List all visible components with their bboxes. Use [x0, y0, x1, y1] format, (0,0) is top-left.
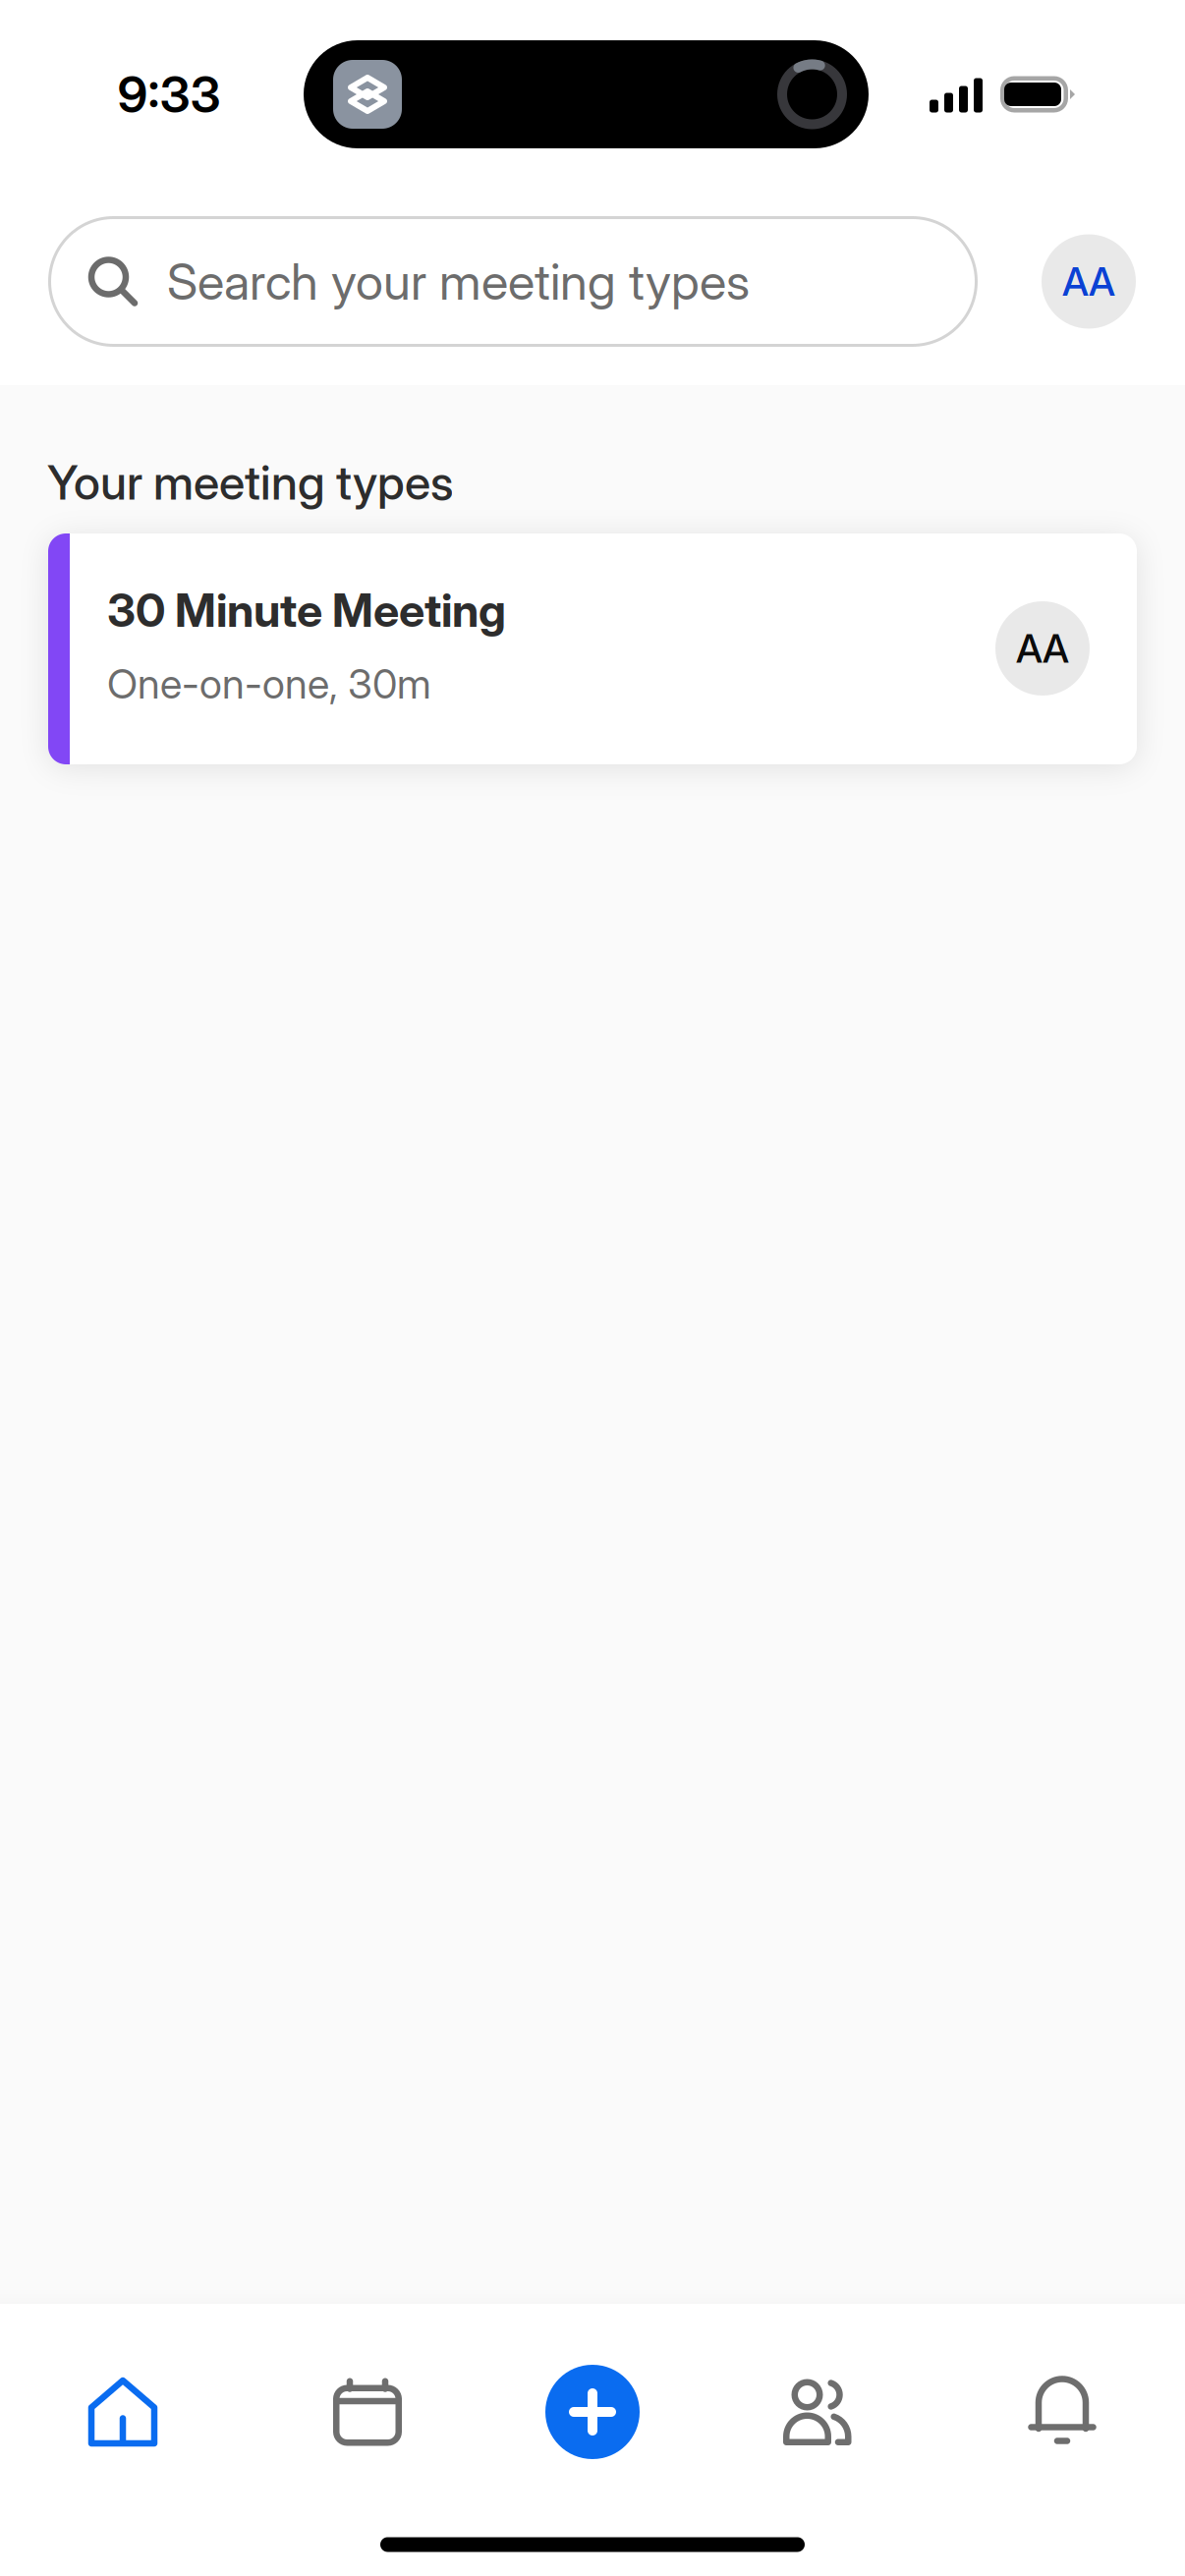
staticText: 9:33: [117, 64, 221, 124]
button[interactable]: Account: [1042, 234, 1136, 329]
button[interactable]: 30 Minute Meeting: [48, 533, 1137, 764]
button[interactable]: Calendar: [269, 2333, 466, 2491]
staticText: AA: [1016, 625, 1069, 672]
button[interactable]: Home: [25, 2333, 221, 2491]
button[interactable]: Create: [494, 2333, 691, 2491]
staticText: AA: [1062, 258, 1115, 305]
staticText: One-on-one, 30m: [107, 659, 431, 708]
button[interactable]: Search your meeting types: [48, 216, 978, 347]
button[interactable]: Notifications: [964, 2333, 1160, 2491]
staticText: 30 Minute Meeting: [107, 582, 506, 638]
button[interactable]: Contacts: [719, 2333, 916, 2491]
staticText: Search your meeting types: [167, 251, 750, 312]
staticText: Your meeting types: [47, 454, 454, 511]
